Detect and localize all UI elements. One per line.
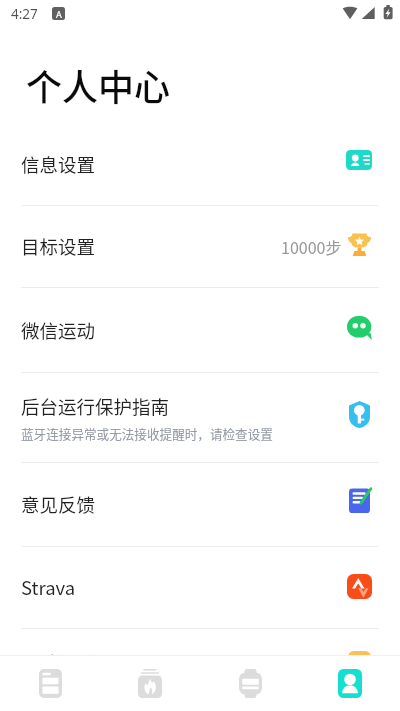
button[interactable]: Device bbox=[200, 656, 300, 711]
button[interactable]: 意见反馈 bbox=[0, 463, 400, 546]
button[interactable]: Profile bbox=[300, 656, 400, 711]
staticText: 蓝牙连接异常或无法接收提醒时，请检查设置 bbox=[21, 424, 273, 442]
staticText: 信息设置 bbox=[21, 151, 96, 178]
staticText: A bbox=[56, 8, 62, 20]
staticText: 10000步 bbox=[281, 235, 342, 258]
button[interactable]: 后台运行保护指南 bbox=[0, 373, 400, 462]
button[interactable]: 信息设置 bbox=[0, 124, 400, 205]
button[interactable]: 目标设置 bbox=[0, 206, 400, 287]
button[interactable]: 微信运动 bbox=[0, 288, 400, 372]
staticText: 目标设置 bbox=[21, 233, 96, 260]
button[interactable]: Activity bbox=[100, 656, 200, 711]
button[interactable]: Card bbox=[0, 656, 100, 711]
staticText: 意见反馈 bbox=[21, 491, 96, 518]
staticText: 运动记录 bbox=[21, 649, 96, 655]
button[interactable]: 运动记录 bbox=[0, 629, 400, 655]
staticText: 后台运行保护指南 bbox=[21, 393, 170, 420]
staticText: 4:27 bbox=[11, 5, 38, 23]
button[interactable]: Strava bbox=[0, 547, 400, 628]
staticText: 个人中心 bbox=[26, 59, 171, 111]
staticText: Strava bbox=[21, 574, 76, 601]
staticText: 微信运动 bbox=[21, 317, 96, 344]
